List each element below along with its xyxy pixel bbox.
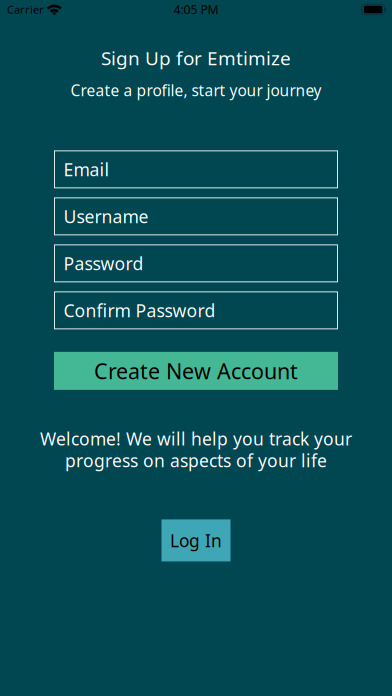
staticText: Welcome! We will help you track your — [40, 427, 352, 451]
staticText: 4:05 PM — [173, 1, 218, 18]
button[interactable]: Username — [54, 198, 337, 235]
staticText: Username — [63, 204, 148, 228]
staticText: Create New Account — [94, 356, 298, 385]
button[interactable]: Confirm Password — [54, 292, 337, 329]
staticText: Log In — [170, 529, 222, 552]
button[interactable]: Email — [54, 151, 337, 188]
staticText: Create a profile, start your journey — [70, 80, 321, 101]
staticText: Carrier — [7, 2, 44, 17]
button[interactable]: Password — [54, 245, 337, 282]
button[interactable]: Create New Account — [54, 352, 338, 390]
staticText: Confirm Password — [63, 298, 215, 322]
staticText: Password — [63, 251, 143, 275]
button[interactable]: Log In — [161, 519, 230, 561]
staticText: Email — [63, 157, 109, 181]
staticText: progress on aspects of your life — [65, 449, 327, 472]
staticText: Sign Up for Emtimize — [101, 45, 291, 71]
